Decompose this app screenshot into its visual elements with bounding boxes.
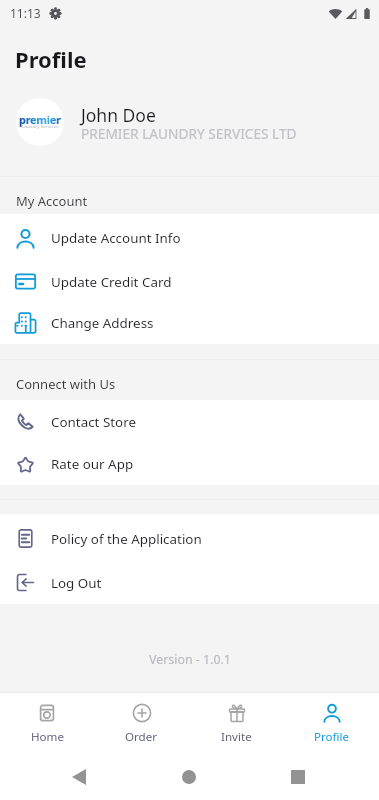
staticText: Laundry Services xyxy=(22,124,59,130)
staticText: premier xyxy=(19,112,61,127)
other: Profile photo xyxy=(16,98,64,146)
staticText: Rate our App xyxy=(51,455,134,473)
staticText: Connect with Us xyxy=(16,375,116,393)
staticText: Contact Store xyxy=(51,413,137,431)
button[interactable]: Rate our App xyxy=(0,443,379,485)
staticText: Update Account Info xyxy=(51,229,181,247)
button[interactable]: Profile xyxy=(284,693,379,755)
staticText: John Doe xyxy=(81,103,156,127)
staticText: Profile xyxy=(15,44,87,74)
button[interactable]: Settings xyxy=(49,7,62,20)
button[interactable]: Order xyxy=(94,693,189,755)
button[interactable]: Invite xyxy=(189,693,284,755)
button[interactable]: Back xyxy=(72,769,86,785)
button[interactable]: Log Out xyxy=(0,561,379,604)
staticText: Update Credit Card xyxy=(51,273,172,291)
button[interactable]: Change Address xyxy=(0,301,379,344)
button[interactable]: Update Credit Card xyxy=(0,260,379,303)
button[interactable]: Home xyxy=(0,693,94,755)
button[interactable]: Contact Store xyxy=(0,400,379,443)
staticText: Version - 1.0.1 xyxy=(149,651,231,668)
staticText: Invite xyxy=(221,729,252,745)
button[interactable]: Policy of the Application xyxy=(0,516,379,561)
staticText: Policy of the Application xyxy=(51,530,202,548)
staticText: My Account xyxy=(16,192,88,210)
staticText: 11:13 xyxy=(10,5,41,21)
staticText: Home xyxy=(31,729,64,745)
button[interactable]: Home xyxy=(182,770,196,784)
button[interactable]: Profile photo xyxy=(0,90,379,156)
staticText: Order xyxy=(125,729,158,745)
staticText: Change Address xyxy=(51,314,154,332)
staticText: PREMIER LAUNDRY SERVICES LTD xyxy=(81,124,297,143)
button[interactable]: Update Account Info xyxy=(0,216,379,260)
staticText: Profile xyxy=(314,729,350,745)
staticText: Log Out xyxy=(51,574,102,592)
